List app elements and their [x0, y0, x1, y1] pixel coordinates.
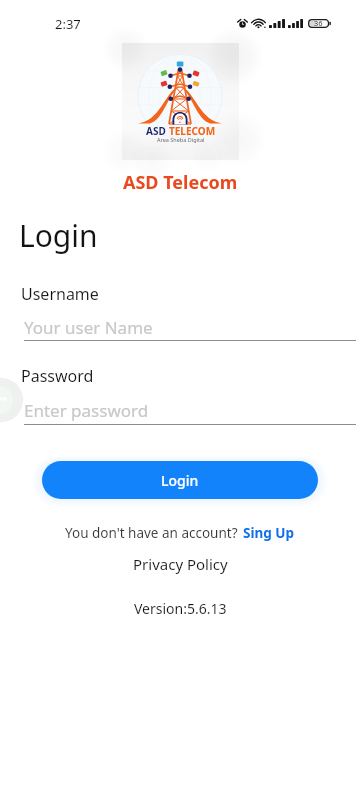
staticText: ASD — [146, 124, 166, 138]
button[interactable]: Privacy Policy — [133, 554, 228, 574]
button[interactable]: Enter password — [24, 399, 356, 429]
staticText: Sing Up — [243, 524, 295, 542]
staticText: 2:37 — [55, 15, 81, 33]
staticText: Version:5.6.13 — [134, 599, 227, 618]
staticText: Username — [21, 283, 99, 305]
staticText: Privacy Policy — [133, 554, 228, 574]
button[interactable]: Login — [42, 461, 318, 499]
button[interactable]: Sing Up — [243, 524, 295, 542]
staticText: Login — [19, 215, 98, 256]
staticText: 36 — [314, 18, 323, 28]
staticText: TELECOM — [169, 124, 216, 138]
staticText: Login — [161, 471, 199, 490]
staticText: Your user Name — [24, 316, 153, 339]
staticText: Password — [21, 365, 94, 387]
staticText: Enter password — [24, 399, 149, 422]
staticText: Area Sheba Digital — [157, 136, 205, 143]
staticText: You don't have an account? — [65, 524, 238, 542]
staticText: ASD Telecom — [123, 170, 238, 195]
button[interactable]: Your user Name — [24, 316, 356, 346]
